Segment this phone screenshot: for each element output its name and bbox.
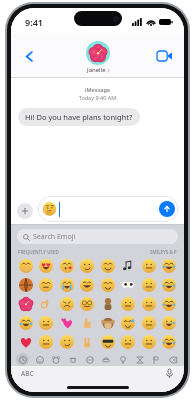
button[interactable]: Emoji [37,257,55,275]
button[interactable]: Emoji [99,257,117,275]
button[interactable]: Dictation [163,367,175,379]
button[interactable]: Emoji [119,276,137,294]
button[interactable]: Emoji category [99,353,112,366]
button[interactable]: Emoji [78,295,96,313]
button[interactable]: Emoji category [83,353,96,366]
button[interactable]: Emoji [140,257,158,275]
button[interactable]: Emoji category [66,353,79,366]
button[interactable]: Emoji [99,314,117,332]
staticText: Hi! Do you have plans tonight? [25,112,133,122]
button[interactable]: Emoji [37,276,55,294]
button[interactable]: Emoji [160,257,178,275]
button[interactable]: Send [38,196,178,222]
button[interactable]: Emoji [58,257,76,275]
button[interactable]: Emoji [140,295,158,313]
button[interactable]: Emoji [160,314,178,332]
button[interactable]: Emoji [140,276,158,294]
button[interactable]: Emoji [99,276,117,294]
button[interactable]: Back [17,44,41,68]
button[interactable]: Emoji category [149,353,162,366]
button[interactable]: Search Emoji [17,229,178,244]
button[interactable]: Janelle [86,41,110,74]
button[interactable]: Emoji [140,314,158,332]
button[interactable]: Emoji category [116,353,129,366]
button[interactable]: Emoji [58,295,76,313]
staticText: SMILEYS & P [150,249,177,255]
button[interactable]: Emoji category [33,353,46,366]
staticText: iMessage [11,86,184,93]
button[interactable]: Emoji [78,276,96,294]
button[interactable]: Emoji [119,333,137,351]
staticText: Janelle [87,66,106,74]
button[interactable]: Emoji [37,295,55,313]
button[interactable]: Emoji category [166,353,179,366]
button[interactable]: Emoji [99,333,117,351]
button[interactable]: Emoji category [49,353,62,366]
button[interactable]: Emoji [140,333,158,351]
button[interactable]: Emoji [160,276,178,294]
button[interactable]: Hi! Do you have plans tonight? [18,108,140,126]
button[interactable]: Emoji [119,257,137,275]
button[interactable]: Emoji [58,314,76,332]
staticText: 9:41 [25,16,43,28]
button[interactable]: Emoji [17,257,35,275]
button[interactable]: Emoji [17,276,35,294]
button[interactable]: Emoji [119,295,137,313]
button[interactable]: Emoji [58,276,76,294]
button[interactable]: Emoji [17,314,35,332]
button[interactable]: Send [159,201,175,217]
button[interactable]: Emoji category [133,353,146,366]
button[interactable]: Emoji [78,257,96,275]
button[interactable]: Emoji [17,295,35,313]
button[interactable]: Emoji [119,314,137,332]
staticText: Today 9:40 AM [11,94,184,101]
button[interactable]: Emoji [160,333,178,351]
button[interactable]: Emoji [78,333,96,351]
button[interactable]: Emoji [37,333,55,351]
button[interactable]: Emoji [160,295,178,313]
button[interactable]: ABC [21,369,34,378]
staticText: Search Emoji [33,232,76,242]
button[interactable]: Emoji [99,295,117,313]
button[interactable]: Add attachment [17,203,33,219]
button[interactable]: Emoji [17,333,35,351]
button[interactable]: Emoji category [16,353,29,366]
button[interactable]: Emoji [58,333,76,351]
button[interactable]: Emoji [78,314,96,332]
staticText: FREQUENTLY USED [18,249,59,255]
button[interactable]: FaceTime video call [152,44,176,68]
button[interactable]: Emoji [37,314,55,332]
